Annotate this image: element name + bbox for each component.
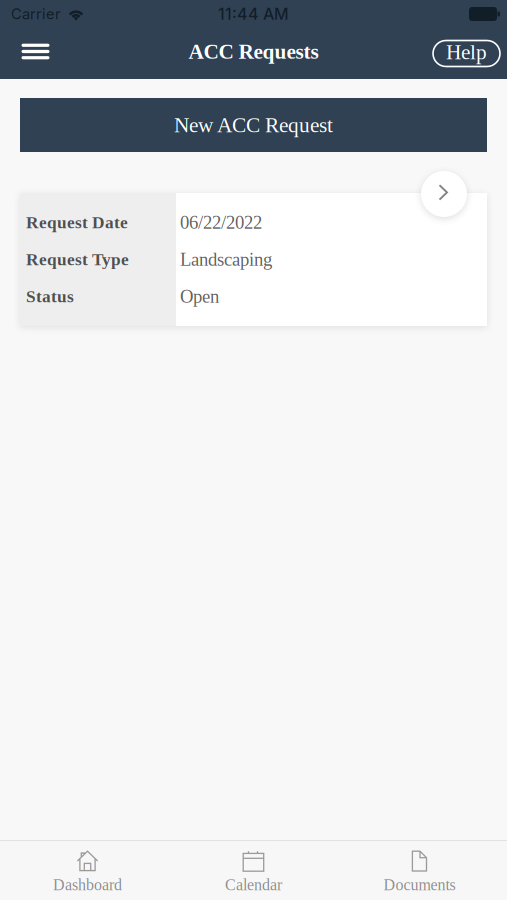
staticText: Carrier bbox=[11, 5, 61, 23]
staticText: Dashboard bbox=[53, 876, 122, 894]
staticText: Request Date bbox=[26, 213, 128, 232]
button[interactable]: Calendar bbox=[170, 840, 336, 900]
staticText: Documents bbox=[383, 876, 455, 894]
staticText: Request Type bbox=[26, 250, 129, 269]
button[interactable]: Help bbox=[433, 28, 507, 79]
staticText: Landscaping bbox=[180, 249, 272, 270]
button[interactable]: Documents bbox=[336, 840, 502, 900]
button[interactable]: Dashboard bbox=[4, 840, 170, 900]
staticText: Help bbox=[446, 40, 487, 64]
button[interactable]: Request Date bbox=[20, 193, 487, 326]
staticText: ACC Requests bbox=[188, 40, 318, 63]
button[interactable]: Open request bbox=[421, 171, 467, 217]
button[interactable]: New ACC Request bbox=[20, 98, 487, 152]
staticText: 06/22/2022 bbox=[180, 212, 262, 233]
staticText: New ACC Request bbox=[174, 113, 333, 137]
staticText: Status bbox=[26, 287, 74, 306]
staticText: Open bbox=[180, 286, 219, 307]
staticText: 11:44 AM bbox=[218, 4, 289, 24]
button[interactable]: Menu bbox=[0, 28, 71, 79]
staticText: Calendar bbox=[225, 876, 282, 894]
